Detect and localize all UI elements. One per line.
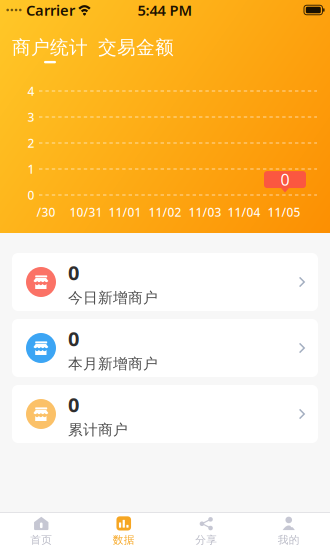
button[interactable]: 交易金额 [88,36,174,64]
button[interactable]: 商户统计 [12,36,88,64]
button[interactable]: 分享 [165,513,247,550]
staticText: 1 [27,161,34,177]
button[interactable]: 我的 [247,513,330,550]
staticText: 数据 [113,533,135,546]
staticText: 10/31 [69,204,102,220]
button[interactable]: 数据 [82,513,165,550]
staticText: 11/01 [108,204,141,220]
staticText: 4 [27,83,34,99]
staticText: 11/02 [148,204,181,220]
staticText: 11/05 [267,204,300,220]
staticText: 商户统计 [12,36,88,59]
staticText: 交易金额 [98,36,174,59]
staticText: 分享 [195,533,217,546]
staticText: 0 [27,187,34,203]
staticText: 今日新增商户 [68,289,158,307]
button[interactable]: 0 [12,319,318,377]
staticText: 3 [27,109,34,125]
staticText: /30 [36,204,55,220]
staticText: 本月新增商户 [68,355,158,373]
staticText: 5:44 PM [137,0,192,20]
button[interactable]: 首页 [0,513,82,550]
staticText: 0 [68,325,79,352]
staticText: 11/04 [227,204,260,220]
staticText: 0 [280,169,289,190]
staticText: 首页 [30,533,52,546]
staticText: 2 [27,135,34,151]
staticText: 我的 [278,533,300,546]
staticText: Carrier [26,0,75,20]
button[interactable]: 0 [12,385,318,443]
staticText: 0 [68,391,79,418]
button[interactable]: 0 [12,253,318,311]
staticText: 0 [68,259,79,286]
staticText: 累计商户 [68,421,128,439]
staticText: 11/03 [188,204,221,220]
